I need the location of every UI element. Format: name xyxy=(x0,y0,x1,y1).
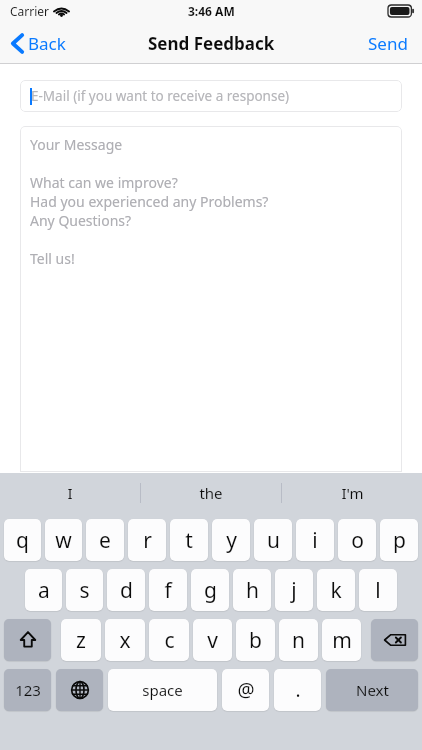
staticText: c xyxy=(164,626,175,655)
staticText: w xyxy=(55,526,72,555)
staticText: r xyxy=(143,526,152,555)
staticText: v xyxy=(207,626,218,655)
button[interactable]: w xyxy=(45,519,82,561)
staticText: m xyxy=(332,626,352,655)
staticText: a xyxy=(38,576,50,605)
staticText: Back xyxy=(28,32,66,55)
button[interactable]: Next xyxy=(326,669,418,711)
button[interactable]: x xyxy=(105,619,145,661)
staticText: k xyxy=(330,576,342,605)
staticText: j xyxy=(291,576,297,605)
staticText: s xyxy=(79,576,90,605)
button[interactable]: l xyxy=(359,569,397,611)
staticText: p xyxy=(393,526,406,555)
button[interactable]: Shift xyxy=(4,619,51,661)
staticText: Any Questions? xyxy=(30,211,132,230)
button[interactable]: . xyxy=(274,669,321,711)
button[interactable]: d xyxy=(107,569,145,611)
staticText: 123 xyxy=(15,680,41,700)
button[interactable]: k xyxy=(317,569,355,611)
button[interactable]: I xyxy=(0,473,140,512)
button[interactable]: n xyxy=(279,619,318,661)
button[interactable]: h xyxy=(233,569,271,611)
button[interactable]: q xyxy=(4,519,41,561)
button[interactable]: s xyxy=(66,569,103,611)
staticText: l xyxy=(375,576,381,605)
button[interactable]: u xyxy=(254,519,292,561)
staticText: g xyxy=(204,576,217,605)
staticText: @ xyxy=(237,677,255,703)
staticText: the xyxy=(199,483,223,503)
button[interactable]: j xyxy=(275,569,313,611)
staticText: Carrier xyxy=(10,3,50,19)
staticText: . xyxy=(295,677,301,703)
button[interactable]: I'm xyxy=(282,473,422,512)
staticText: i xyxy=(312,526,318,555)
staticText: space xyxy=(142,680,183,700)
staticText: Send Feedback xyxy=(148,32,275,55)
staticText: o xyxy=(351,526,364,555)
button[interactable]: E-Mail (if you want to receive a respons… xyxy=(20,80,402,112)
button[interactable]: i xyxy=(296,519,334,561)
button[interactable]: g xyxy=(191,569,229,611)
button[interactable]: space xyxy=(108,669,217,711)
staticText: Your Message xyxy=(30,135,123,154)
staticText: q xyxy=(16,526,29,555)
staticText: e xyxy=(99,526,111,555)
staticText: y xyxy=(226,526,237,555)
button[interactable]: Backspace xyxy=(371,619,418,661)
button[interactable]: @ xyxy=(222,669,269,711)
button[interactable]: y xyxy=(212,519,250,561)
button[interactable]: Switch keyboard xyxy=(56,669,103,711)
staticText: d xyxy=(120,576,133,605)
button[interactable]: v xyxy=(193,619,232,661)
button[interactable]: b xyxy=(236,619,275,661)
staticText: What can we improve? xyxy=(30,173,178,192)
staticText: 3:46 AM xyxy=(188,3,235,19)
staticText: n xyxy=(292,626,305,655)
staticText: I xyxy=(67,483,73,503)
staticText: t xyxy=(185,526,193,555)
button[interactable]: Your Message xyxy=(20,126,402,472)
button[interactable]: Send xyxy=(354,26,422,61)
staticText: I'm xyxy=(341,483,364,503)
button[interactable]: the xyxy=(141,473,281,512)
button[interactable]: f xyxy=(149,569,187,611)
button[interactable]: t xyxy=(170,519,208,561)
staticText: E-Mail (if you want to receive a respons… xyxy=(31,87,290,105)
button[interactable]: z xyxy=(61,619,101,661)
staticText: Next xyxy=(356,680,389,700)
button[interactable]: a xyxy=(25,569,62,611)
button[interactable]: 123 xyxy=(4,669,51,711)
button[interactable]: p xyxy=(380,519,418,561)
staticText: Had you experienced any Problems? xyxy=(30,192,269,211)
button[interactable]: o xyxy=(338,519,376,561)
button[interactable]: e xyxy=(86,519,124,561)
button[interactable]: Back xyxy=(0,26,80,61)
staticText: b xyxy=(249,626,262,655)
button[interactable]: r xyxy=(128,519,166,561)
button[interactable]: m xyxy=(322,619,361,661)
staticText: h xyxy=(246,576,259,605)
button[interactable]: c xyxy=(149,619,189,661)
staticText: f xyxy=(164,576,172,605)
staticText: z xyxy=(76,626,86,655)
staticText: Tell us! xyxy=(30,249,75,268)
staticText: Send xyxy=(368,32,408,55)
staticText: u xyxy=(267,526,280,555)
staticText: x xyxy=(119,626,131,655)
